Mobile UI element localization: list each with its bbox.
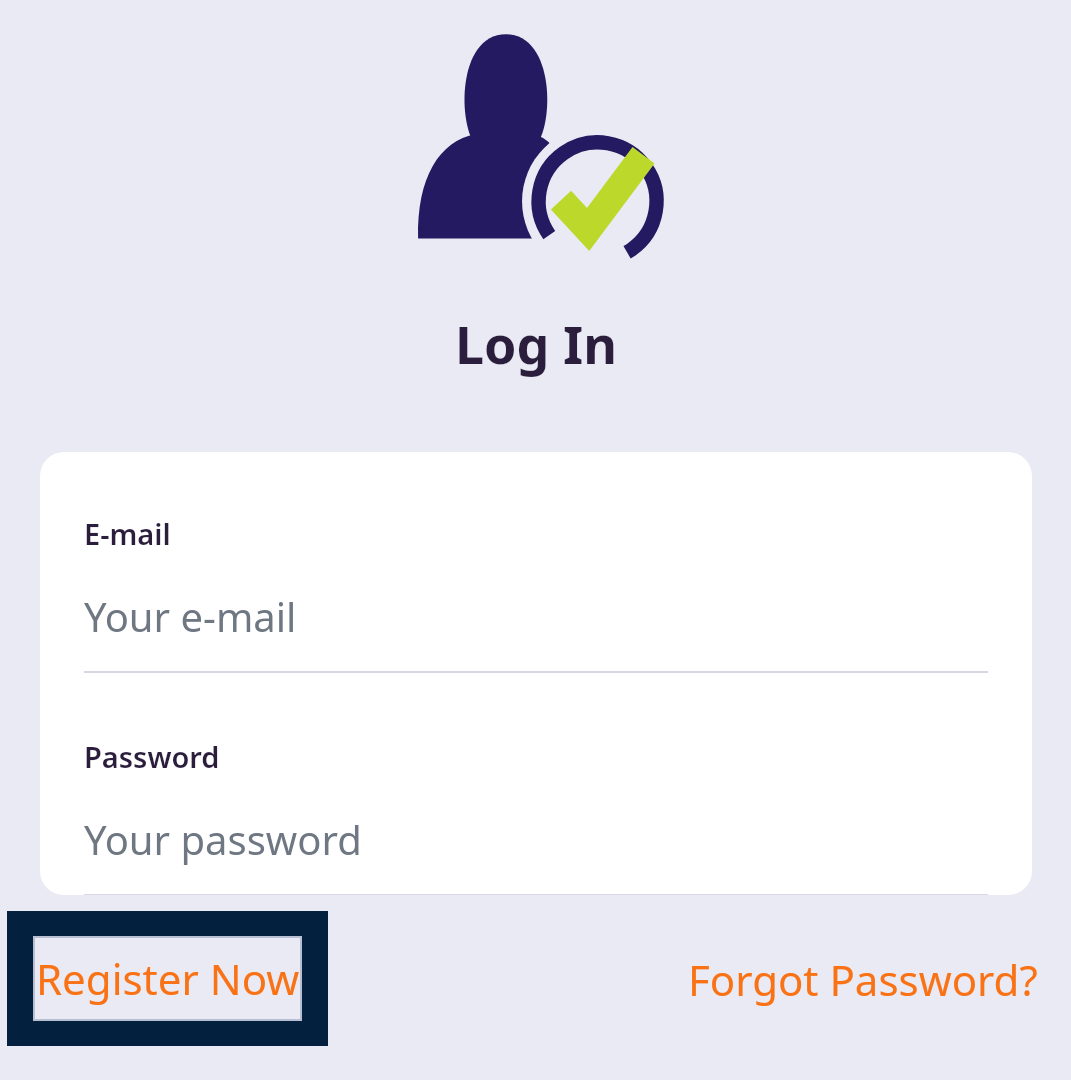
button[interactable]: Register Now bbox=[33, 936, 302, 1021]
staticText: Your password bbox=[84, 812, 362, 866]
button[interactable]: Forgot Password? bbox=[680, 940, 1046, 1018]
staticText: Register Now bbox=[36, 950, 300, 1007]
staticText: Log In bbox=[455, 308, 617, 379]
staticText: Forgot Password? bbox=[688, 951, 1038, 1008]
staticText: Password bbox=[84, 737, 220, 776]
button[interactable]: Password bbox=[40, 737, 1032, 895]
button[interactable]: E-mail bbox=[40, 514, 1032, 673]
staticText: Your e-mail bbox=[84, 589, 297, 643]
staticText: E-mail bbox=[84, 514, 171, 553]
